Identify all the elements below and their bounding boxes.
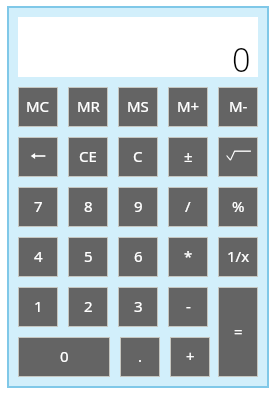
staticText: 6 (134, 246, 143, 266)
button[interactable]: M- (219, 88, 257, 126)
button[interactable]: C (119, 138, 157, 176)
button[interactable]: MC (19, 88, 57, 126)
staticText: 0 (232, 37, 251, 81)
staticText: 0 (60, 346, 69, 366)
button[interactable]: 9 (119, 188, 157, 226)
button[interactable]: * (169, 238, 207, 276)
button[interactable]: M+ (169, 88, 207, 126)
button[interactable]: % (219, 188, 257, 226)
staticText: / (185, 196, 191, 216)
staticText: 3 (134, 296, 143, 316)
button[interactable]: 0 (19, 338, 109, 376)
button[interactable]: + (171, 338, 209, 376)
button[interactable]: CE (69, 138, 107, 176)
button[interactable]: - (169, 288, 207, 326)
staticText: + (186, 346, 195, 366)
button[interactable]: 1 (19, 288, 57, 326)
button[interactable]: 3 (119, 288, 157, 326)
button[interactable]: MR (69, 88, 107, 126)
staticText: 9 (134, 196, 143, 216)
button[interactable]: 1/x (219, 238, 257, 276)
staticText: 5 (84, 246, 93, 266)
staticText: M- (229, 96, 248, 116)
staticText: = (234, 321, 243, 341)
staticText: 8 (84, 196, 93, 216)
staticText: ± (184, 146, 193, 166)
button[interactable]: 4 (19, 238, 57, 276)
button[interactable]: 2 (69, 288, 107, 326)
staticText: MC (26, 96, 50, 116)
staticText: CE (79, 146, 97, 166)
button[interactable]: Square root (219, 138, 257, 176)
button[interactable]: MS (119, 88, 157, 126)
staticText: M+ (177, 96, 200, 116)
button[interactable]: Backspace (19, 138, 57, 176)
button[interactable]: 5 (69, 238, 107, 276)
staticText: 2 (84, 296, 93, 316)
staticText: 7 (34, 196, 43, 216)
staticText: MR (77, 96, 100, 116)
button[interactable]: / (169, 188, 207, 226)
button[interactable]: 8 (69, 188, 107, 226)
button[interactable]: ± (169, 138, 207, 176)
staticText: . (138, 346, 143, 366)
staticText: MS (127, 96, 149, 116)
staticText: 1/x (227, 246, 250, 266)
staticText: 4 (34, 246, 43, 266)
button[interactable]: = (219, 288, 257, 376)
staticText: - (186, 296, 191, 316)
button[interactable]: 6 (119, 238, 157, 276)
button[interactable]: . (121, 338, 159, 376)
button[interactable]: 7 (19, 188, 57, 226)
staticText: 1 (34, 296, 43, 316)
staticText: % (232, 196, 245, 216)
staticText: C (133, 146, 143, 166)
staticText: * (184, 246, 193, 266)
